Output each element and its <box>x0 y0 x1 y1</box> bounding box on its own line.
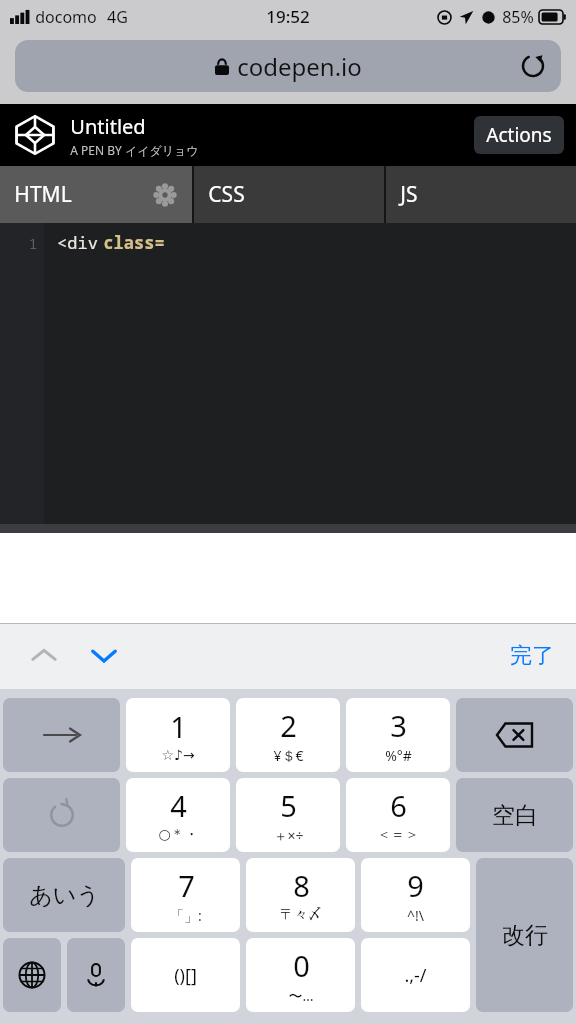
staticText: 0 <box>293 946 310 985</box>
button[interactable]: 2 <box>236 698 340 772</box>
staticText: 85% <box>502 6 534 28</box>
staticText: %°# <box>385 746 412 765</box>
button[interactable]: Dictation <box>67 938 125 1012</box>
button[interactable]: 改行 <box>476 858 573 1012</box>
staticText: 改行 <box>502 921 548 950</box>
button[interactable]: 6 <box>346 778 450 852</box>
button[interactable]: Actions <box>474 116 564 154</box>
staticText: docomo <box>35 6 97 28</box>
staticText: 完了 <box>510 642 554 670</box>
staticText: ^!\ <box>407 906 424 925</box>
staticText: Untitled <box>70 113 146 140</box>
staticText: <div <box>52 231 103 254</box>
staticText: 19:52 <box>266 5 310 28</box>
staticText: ☆♪→ <box>161 747 195 763</box>
staticText: class= <box>103 231 165 254</box>
button[interactable]: 8 <box>246 858 355 932</box>
staticText: 「」: <box>170 906 202 925</box>
button[interactable]: Delete <box>456 698 573 772</box>
button[interactable] <box>3 698 120 772</box>
staticText: 2 <box>280 706 297 745</box>
staticText: 1 <box>170 707 187 746</box>
button[interactable]: Undo <box>3 778 120 852</box>
button[interactable]: 7 <box>131 858 240 932</box>
staticText: 9 <box>407 866 424 905</box>
button[interactable]: CSS <box>194 166 384 223</box>
staticText: ¥＄€ <box>273 746 304 765</box>
staticText: 4G <box>107 6 128 28</box>
staticText: ○＊・ <box>158 826 199 844</box>
button[interactable]: 3 <box>346 698 450 772</box>
staticText: Actions <box>486 122 552 148</box>
staticText: 4 <box>170 786 187 825</box>
button[interactable]: 完了 <box>502 636 562 676</box>
staticText: HTML <box>14 180 72 209</box>
staticText: CSS <box>208 180 245 209</box>
staticText: 6 <box>390 786 407 825</box>
staticText: あいう <box>29 881 100 910</box>
staticText: ＜＝＞ <box>377 826 419 844</box>
button[interactable]: 空白 <box>456 778 573 852</box>
staticText: 3 <box>390 706 407 745</box>
staticText: 7 <box>178 866 195 905</box>
button[interactable]: 0 <box>246 938 355 1012</box>
button[interactable]: ()[] <box>131 938 240 1012</box>
button[interactable]: あいう <box>3 858 125 932</box>
staticText: codepen.io <box>237 50 362 83</box>
staticText: 1 <box>28 233 38 253</box>
button[interactable]: HTML settings <box>152 182 178 208</box>
button[interactable] <box>12 112 58 158</box>
button[interactable]: Previous field <box>22 634 66 678</box>
button[interactable]: Change keyboard <box>3 938 61 1012</box>
button[interactable]: Next field <box>82 634 126 678</box>
staticText: 〜… <box>288 986 314 1005</box>
button[interactable]: 5 <box>236 778 340 852</box>
staticText: 空白 <box>492 801 538 830</box>
button[interactable]: 1 <box>126 698 230 772</box>
button[interactable]: JS <box>386 166 576 223</box>
staticText: 〒々〆 <box>280 906 322 924</box>
staticText: ＋×÷ <box>273 826 304 845</box>
staticText: A PEN BY イイダリョウ <box>70 142 199 158</box>
staticText: JS <box>400 180 418 209</box>
button[interactable]: codepen.io <box>15 40 561 92</box>
button[interactable]: HTML <box>0 166 192 223</box>
button[interactable]: 4 <box>126 778 230 852</box>
staticText: ()[] <box>174 963 197 988</box>
button[interactable]: .,-/ <box>361 938 470 1012</box>
staticText: .,-/ <box>404 963 427 988</box>
button[interactable]: Reload <box>519 52 547 80</box>
staticText: 5 <box>280 786 297 825</box>
button[interactable]: 9 <box>361 858 470 932</box>
staticText: 8 <box>293 866 310 905</box>
